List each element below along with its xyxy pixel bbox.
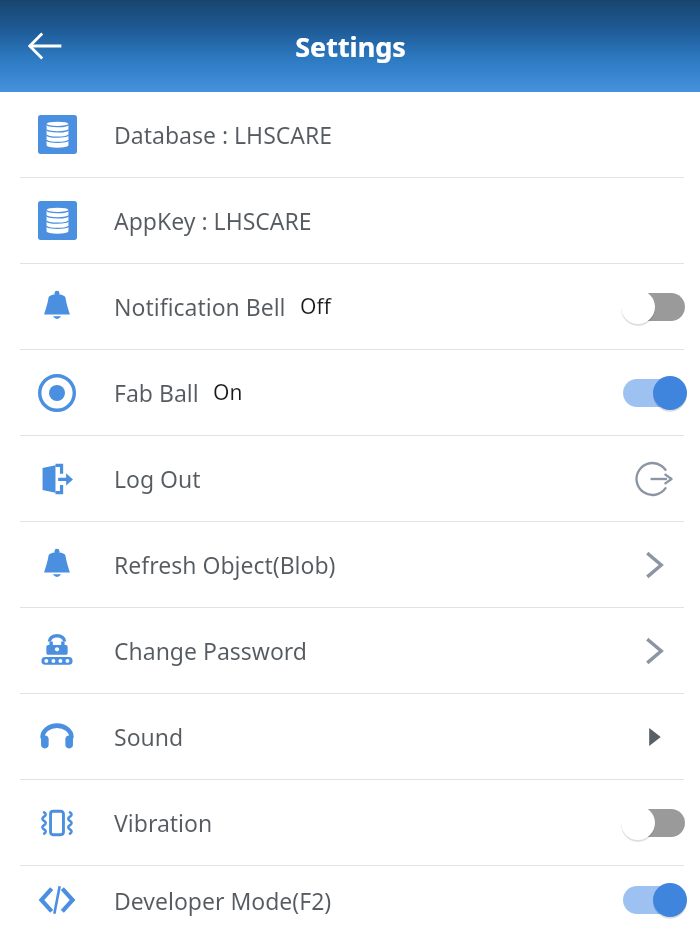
button[interactable]: Refresh Object(Blob) <box>0 522 700 607</box>
button[interactable]: Toggle off <box>618 287 690 327</box>
staticText: Sound <box>114 721 184 752</box>
button[interactable]: Notification Bell <box>0 264 700 349</box>
staticText: Change Password <box>114 635 307 666</box>
button[interactable]: Back <box>14 15 76 77</box>
button[interactable]: Fab Ball <box>0 350 700 435</box>
button[interactable]: Toggle on <box>618 880 690 920</box>
button[interactable]: Toggle off <box>618 803 690 843</box>
button[interactable]: Developer Mode(F2) <box>0 866 700 934</box>
staticText: Off <box>300 292 331 321</box>
button[interactable]: Database : LHSCARE <box>0 92 700 177</box>
staticText: AppKey : LHSCARE <box>114 205 312 236</box>
staticText: Refresh Object(Blob) <box>114 549 336 580</box>
staticText: Settings <box>295 28 406 65</box>
button[interactable]: Vibration <box>0 780 700 865</box>
button[interactable]: Log Out <box>0 436 700 521</box>
staticText: Notification Bell <box>114 291 286 322</box>
button[interactable]: Toggle on <box>618 373 690 413</box>
button[interactable]: AppKey : LHSCARE <box>0 178 700 263</box>
staticText: On <box>213 378 243 407</box>
staticText: Database : LHSCARE <box>114 119 333 150</box>
staticText: Developer Mode(F2) <box>114 885 332 916</box>
staticText: Vibration <box>114 807 213 838</box>
button[interactable]: Open <box>626 537 682 593</box>
button[interactable]: Change Password <box>0 608 700 693</box>
button[interactable]: Open sound settings <box>626 709 682 765</box>
button[interactable]: Log out <box>626 451 682 507</box>
button[interactable]: Open <box>626 623 682 679</box>
staticText: Fab Ball <box>114 377 199 408</box>
staticText: Log Out <box>114 463 201 494</box>
button[interactable]: Sound <box>0 694 700 779</box>
